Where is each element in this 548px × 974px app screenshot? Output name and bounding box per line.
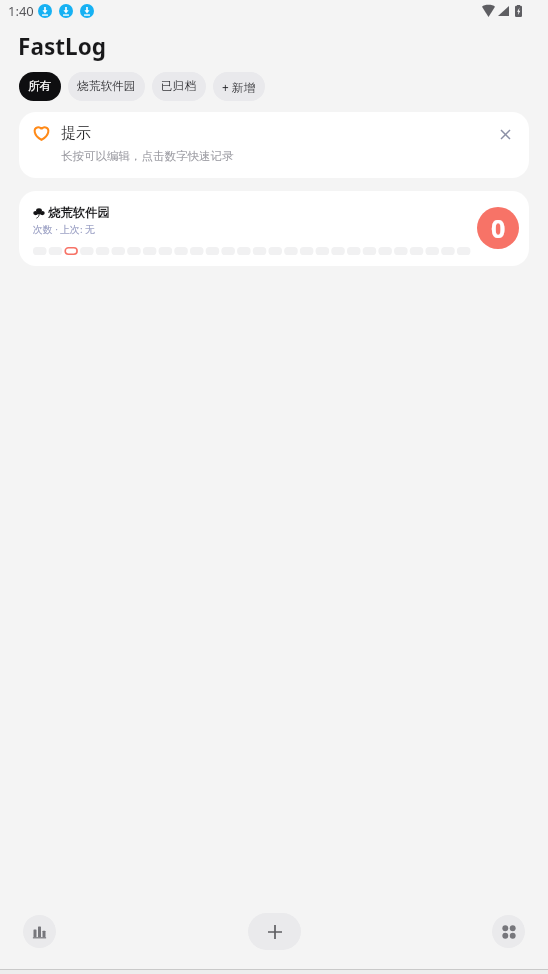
staticText: 烧荒软件园 [48, 205, 110, 220]
staticText: 所有 [28, 79, 52, 94]
staticText: FastLog [18, 31, 107, 62]
button[interactable]: 提示 [19, 112, 529, 178]
button[interactable]: 已归档 [152, 72, 206, 101]
button[interactable]: + 新增 [213, 72, 265, 101]
button[interactable]: Increment count [477, 207, 519, 249]
button[interactable]: Statistics [23, 915, 56, 948]
staticText: 次数 · 上次: 无 [33, 223, 95, 236]
staticText: 已归档 [161, 79, 197, 94]
staticText: + 新增 [222, 79, 256, 95]
staticText: 0 [491, 211, 506, 245]
staticText: 长按可以编辑，点击数字快速记录 [61, 149, 234, 163]
button[interactable]: Close [493, 122, 517, 146]
button[interactable]: 烧荒软件园 [19, 191, 529, 266]
button[interactable]: Apps [492, 915, 525, 948]
button[interactable]: Add [248, 913, 301, 950]
staticText: 烧荒软件园 [77, 79, 136, 94]
staticText: 1:40 [8, 2, 34, 20]
staticText: 提示 [61, 124, 91, 143]
button[interactable]: 烧荒软件园 [68, 72, 145, 101]
button[interactable]: 所有 [19, 72, 61, 101]
